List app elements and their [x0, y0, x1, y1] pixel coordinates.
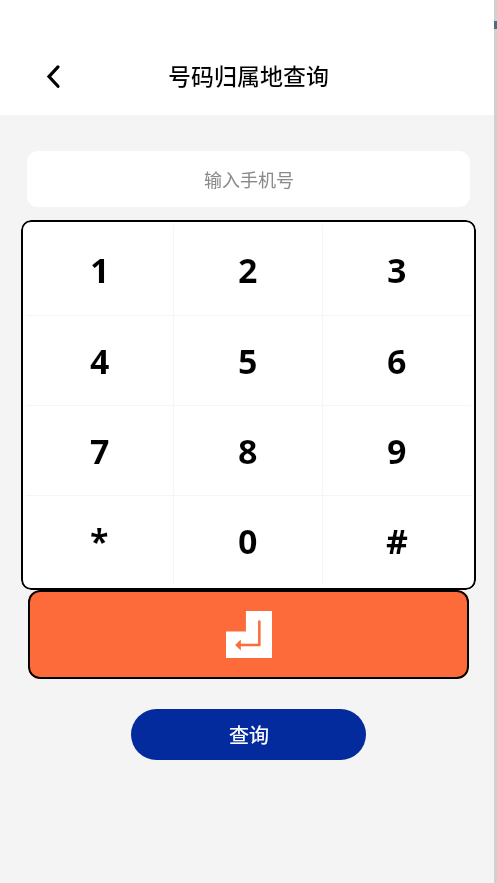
- button[interactable]: 3: [323, 225, 471, 315]
- staticText: 查询: [229, 720, 269, 749]
- button[interactable]: 查询: [131, 709, 366, 760]
- staticText: 5: [238, 338, 258, 384]
- staticText: 3: [387, 247, 407, 293]
- staticText: 号码归属地查询: [168, 58, 329, 91]
- button[interactable]: #: [323, 496, 471, 585]
- staticText: 输入手机号: [204, 166, 294, 192]
- staticText: 2: [238, 247, 258, 293]
- button[interactable]: 7: [26, 406, 173, 495]
- staticText: 4: [90, 338, 110, 384]
- button[interactable]: 5: [174, 316, 322, 405]
- staticText: 6: [387, 338, 407, 384]
- button[interactable]: 6: [323, 316, 471, 405]
- staticText: 8: [238, 428, 258, 474]
- button[interactable]: 8: [174, 406, 322, 495]
- button[interactable]: 9: [323, 406, 471, 495]
- button[interactable]: 4: [26, 316, 173, 405]
- staticText: #: [386, 518, 408, 564]
- staticText: 0: [238, 518, 258, 564]
- staticText: 7: [90, 428, 110, 474]
- button[interactable]: 2: [174, 225, 322, 315]
- button[interactable]: *: [26, 496, 173, 585]
- button[interactable]: 1: [26, 225, 173, 315]
- button[interactable]: Enter: [28, 590, 469, 679]
- button[interactable]: 输入手机号: [27, 151, 470, 207]
- staticText: *: [90, 518, 109, 564]
- button[interactable]: Back: [33, 56, 73, 96]
- staticText: 1: [90, 247, 110, 293]
- button[interactable]: 0: [174, 496, 322, 585]
- staticText: 9: [387, 428, 407, 474]
